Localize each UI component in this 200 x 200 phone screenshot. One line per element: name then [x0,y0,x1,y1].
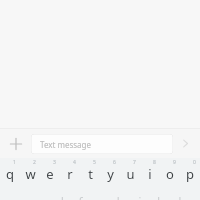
button[interactable]: 1 [0,159,20,187]
button[interactable]: h [110,187,130,200]
button[interactable]: 7 [120,159,140,187]
staticText: j [138,193,142,200]
staticText: h [116,193,125,200]
staticText: e [46,165,54,183]
staticText: 1 [13,159,16,166]
staticText: o [166,165,174,183]
staticText: 6 [113,159,116,166]
staticText: y [107,165,114,183]
staticText: 0 [193,159,196,166]
staticText: 9 [173,159,176,166]
button[interactable]: 8 [140,159,160,187]
staticText: q [6,165,14,183]
button[interactable]: k [150,187,170,200]
staticText: Text message [40,139,92,150]
staticText: i [148,165,152,183]
button[interactable]: l [170,187,190,200]
staticText: k [157,193,164,200]
staticText: 2 [33,159,36,166]
button[interactable]: 3 [40,159,60,187]
staticText: 3 [53,159,56,166]
staticText: d [56,193,64,200]
button[interactable]: Text message [31,134,173,154]
staticText: p [186,165,194,183]
button[interactable]: 6 [100,159,120,187]
staticText: l [178,193,182,200]
button[interactable]: 0 [180,159,200,187]
button[interactable]: d [50,187,70,200]
button[interactable]: Add attachment [0,129,31,158]
button[interactable]: 5 [80,159,100,187]
staticText: 4 [73,159,76,166]
button[interactable]: 4 [60,159,80,187]
button[interactable]: 2 [20,159,40,187]
staticText: 5 [93,159,96,166]
staticText: t [88,165,93,183]
button[interactable]: f [70,187,90,200]
staticText: 8 [153,159,156,166]
staticText: u [126,165,135,183]
staticText: r [67,165,73,183]
staticText: f [78,193,83,200]
button[interactable]: 9 [160,159,180,187]
staticText: 7 [133,159,136,166]
staticText: w [25,165,36,183]
